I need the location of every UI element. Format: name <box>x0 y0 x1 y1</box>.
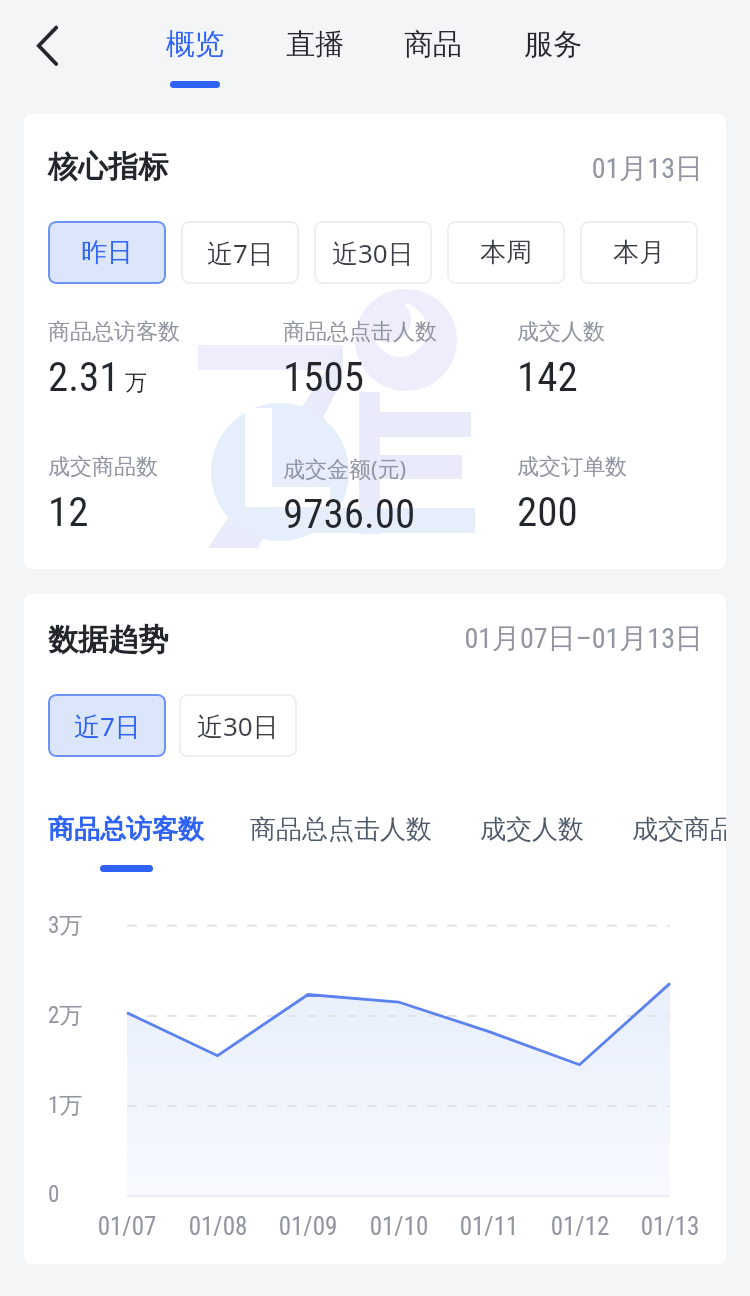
staticText: 直播 <box>286 26 344 63</box>
button[interactable]: 商品总点击人数 <box>250 813 432 865</box>
staticText: 成交人数 <box>517 318 605 346</box>
staticText: 成交金额(元) <box>283 453 407 483</box>
staticText: 昨日 <box>81 236 133 269</box>
button[interactable]: Back <box>12 11 80 79</box>
staticText: 0 <box>48 1181 60 1208</box>
staticText: 01月13日 <box>450 151 703 186</box>
staticText: 成交人数 <box>480 813 584 846</box>
staticText: 近7日 <box>207 235 274 271</box>
staticText: 核心指标 <box>48 148 168 186</box>
staticText: 12 <box>48 488 89 536</box>
staticText: 商品总访客数 <box>48 318 180 346</box>
staticText: 142 <box>517 353 578 401</box>
staticText: 01/11 <box>444 1212 534 1241</box>
button[interactable]: 本月 <box>580 221 698 284</box>
staticText: 本周 <box>480 236 532 269</box>
button[interactable]: 近30日 <box>314 221 432 284</box>
staticText: 01月07日–01月13日 <box>410 621 703 656</box>
staticText: 01/09 <box>263 1212 353 1241</box>
button[interactable]: 成交人数 <box>480 813 584 865</box>
button[interactable]: 本周 <box>447 221 565 284</box>
staticText: 万 <box>125 369 147 397</box>
button[interactable]: 服务 <box>508 26 598 122</box>
button[interactable]: 概览 <box>150 26 240 122</box>
button[interactable]: 近7日 <box>48 694 166 757</box>
staticText: 概览 <box>166 26 224 63</box>
staticText: 商品 <box>404 26 462 63</box>
button[interactable]: 成交商品数 <box>632 813 726 865</box>
staticText: 01/12 <box>535 1212 625 1241</box>
staticText: 数据趋势 <box>48 621 168 659</box>
staticText: 9736.00 <box>283 490 416 538</box>
staticText: 01/08 <box>173 1212 263 1241</box>
button[interactable]: 商品总访客数 <box>48 813 204 872</box>
button[interactable]: 近30日 <box>179 694 297 757</box>
staticText: 服务 <box>524 26 582 63</box>
button[interactable]: 近7日 <box>181 221 299 284</box>
staticText: 2万 <box>48 1001 83 1030</box>
staticText: 3万 <box>48 911 83 940</box>
staticText: 成交商品数 <box>48 453 158 481</box>
button[interactable]: 昨日 <box>48 221 166 284</box>
staticText: 商品总访客数 <box>48 813 204 846</box>
staticText: 近7日 <box>74 708 141 744</box>
staticText: 01/13 <box>625 1212 715 1241</box>
staticText: 近30日 <box>197 708 279 744</box>
staticText: 商品总点击人数 <box>283 318 437 346</box>
staticText: 1505 <box>283 353 364 401</box>
button[interactable]: 商品 <box>388 26 478 122</box>
staticText: 商品总点击人数 <box>250 813 432 846</box>
staticText: 01/07 <box>82 1212 172 1241</box>
staticText: 01/10 <box>354 1212 444 1241</box>
staticText: 2.31 <box>48 353 120 401</box>
staticText: 近30日 <box>332 235 414 271</box>
staticText: 本月 <box>613 236 665 269</box>
button[interactable]: 直播 <box>270 26 360 122</box>
staticText: 1万 <box>48 1091 83 1120</box>
staticText: 成交订单数 <box>517 453 627 481</box>
staticText: 200 <box>517 488 578 536</box>
staticText: 成交商品数 <box>632 813 726 846</box>
